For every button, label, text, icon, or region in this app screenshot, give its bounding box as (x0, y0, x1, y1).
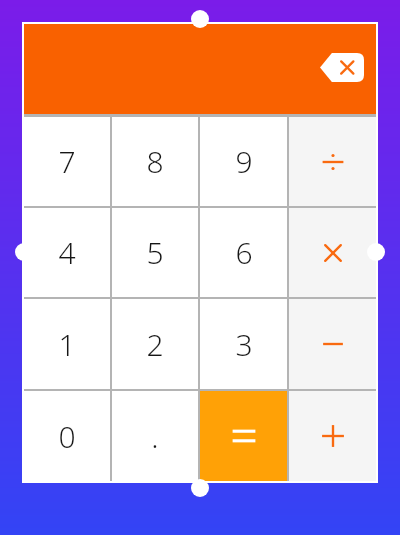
button[interactable]: 0 (24, 391, 110, 481)
staticText: 5 (146, 232, 164, 273)
button[interactable]: 7 (24, 117, 110, 206)
button[interactable]: Resize left (15, 243, 33, 261)
button[interactable]: Add (289, 391, 376, 481)
staticText: 2 (146, 324, 164, 365)
button[interactable]: Resize right (367, 243, 385, 261)
button[interactable]: Subtract (289, 299, 376, 389)
button[interactable]: 5 (112, 208, 198, 297)
staticText: 8 (146, 141, 164, 182)
staticText: . (151, 416, 159, 457)
button[interactable]: 9 (200, 117, 287, 206)
button[interactable]: 4 (24, 208, 110, 297)
staticText: 7 (58, 141, 76, 182)
button[interactable]: Divide (289, 117, 376, 206)
button[interactable]: 2 (112, 299, 198, 389)
staticText: 4 (58, 232, 76, 273)
button[interactable]: Multiply (289, 208, 376, 297)
button[interactable]: Resize top (191, 10, 209, 28)
staticText: 9 (235, 141, 253, 182)
button[interactable]: 8 (112, 117, 198, 206)
staticText: 1 (58, 324, 76, 365)
button[interactable]: Backspace (320, 53, 364, 82)
button[interactable]: Equals (200, 391, 287, 481)
staticText: 0 (58, 416, 76, 457)
button[interactable]: 3 (200, 299, 287, 389)
staticText: 6 (235, 232, 253, 273)
button[interactable]: 6 (200, 208, 287, 297)
button[interactable]: . (112, 391, 198, 481)
button[interactable]: Resize bottom (191, 479, 209, 497)
staticText: 3 (235, 324, 253, 365)
button[interactable]: 1 (24, 299, 110, 389)
